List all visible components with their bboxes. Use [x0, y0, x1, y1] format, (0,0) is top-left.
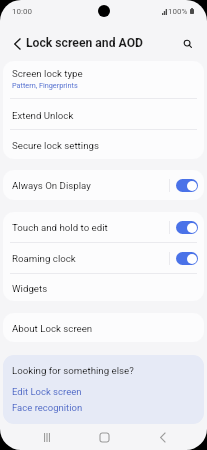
- button[interactable]: Search: [176, 32, 201, 57]
- button[interactable]: Face recognition: [12, 402, 83, 413]
- button[interactable]: Recents: [34, 424, 60, 450]
- button[interactable]: Edit Lock screen: [12, 386, 82, 397]
- staticText: Roaming clock: [12, 253, 76, 264]
- staticText: Lock screen and AOD: [26, 36, 143, 50]
- button[interactable]: Roaming clock: [3, 243, 204, 273]
- button[interactable]: Touch and hold to edit: [3, 212, 204, 242]
- staticText: Always On Display: [12, 180, 91, 191]
- staticText: Touch and hold to edit: [12, 222, 108, 233]
- button[interactable]: Screen lock type: [3, 61, 204, 98]
- button[interactable]: Back: [4, 31, 29, 56]
- staticText: Secure lock settings: [12, 140, 99, 151]
- staticText: Screen lock type: [12, 68, 83, 79]
- button[interactable]: Back: [149, 424, 175, 450]
- staticText: Widgets: [12, 283, 48, 294]
- button[interactable]: Widgets: [3, 274, 204, 301]
- staticText: 100%: [168, 7, 188, 16]
- staticText: About Lock screen: [12, 323, 93, 334]
- button[interactable]: Extend Unlock: [3, 99, 204, 129]
- button[interactable]: About Lock screen: [3, 313, 204, 342]
- staticText: 10:00: [12, 7, 32, 16]
- button[interactable]: Always On Display: [3, 170, 204, 200]
- button[interactable]: Secure lock settings: [3, 130, 204, 159]
- staticText: Pattern, Fingerprints: [12, 81, 78, 90]
- button[interactable]: Home: [91, 424, 117, 450]
- staticText: Looking for something else?: [12, 365, 134, 376]
- staticText: Extend Unlock: [12, 110, 74, 121]
